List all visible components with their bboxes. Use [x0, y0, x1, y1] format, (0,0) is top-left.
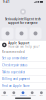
- button[interactable]: Check repair status: [0, 62, 46, 69]
- button[interactable]: Search: [0, 91, 9, 96]
- staticText: Support: [20, 94, 26, 96]
- staticText: Billing and payment: [2, 77, 30, 81]
- staticText: Apple Support: [8, 41, 29, 45]
- staticText: How can we help you?: [8, 45, 39, 48]
- staticText: Find an Apple Store: [2, 84, 30, 88]
- button[interactable]: Billing and payment: [0, 76, 46, 83]
- button[interactable]: Quick action: [15, 27, 27, 39]
- button[interactable]: Set up a new device: [0, 55, 46, 62]
- button[interactable]: More: [37, 91, 46, 96]
- staticText: Set up a new device: [2, 56, 28, 60]
- button[interactable]: Quick action: [1, 27, 13, 39]
- staticText: support for everyone: [8, 21, 38, 25]
- button[interactable]: Quick action: [29, 27, 41, 39]
- button[interactable]: Account: [28, 91, 37, 96]
- staticText: Check repair status: [2, 63, 27, 67]
- staticText: Recommended: [2, 50, 25, 54]
- staticText: Seriously intelligent tech: [5, 17, 41, 21]
- button[interactable]: Support: [18, 91, 28, 96]
- staticText: More: [39, 94, 43, 96]
- button[interactable]: Talk to a specialist: [0, 69, 46, 76]
- button[interactable]: Shop: [9, 91, 18, 96]
- staticText: Account: [29, 94, 35, 96]
- button[interactable]: Find an Apple Store: [0, 83, 46, 90]
- staticText: Shop: [12, 94, 16, 96]
- staticText: 9:41: [3, 0, 10, 4]
- staticText: Search: [2, 94, 8, 96]
- staticText: Talk to a specialist: [2, 70, 25, 74]
